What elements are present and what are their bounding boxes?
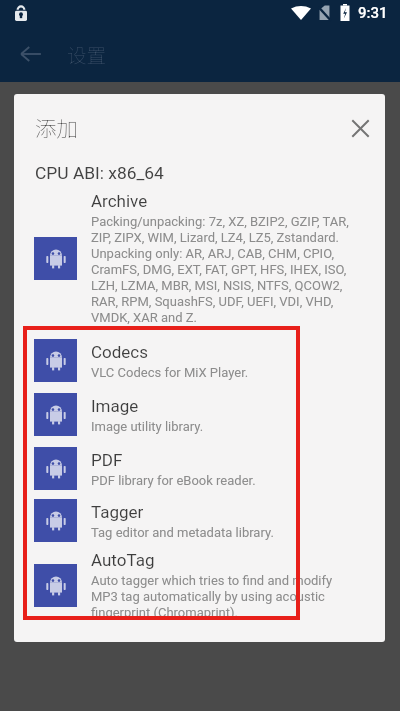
button[interactable]: Image xyxy=(14,393,385,436)
staticText: Tagger xyxy=(91,502,144,522)
button[interactable]: Close xyxy=(345,113,375,143)
staticText: AutoTag xyxy=(91,550,155,570)
staticText: Auto tagger which tries to find and modi… xyxy=(91,573,357,620)
staticText: Codecs xyxy=(91,342,149,362)
staticText: Image xyxy=(91,396,139,416)
button[interactable]: Back xyxy=(13,36,49,72)
staticText: PDF xyxy=(91,450,123,470)
staticText: Tag editor and metadata library. xyxy=(91,525,274,540)
button[interactable]: Codecs xyxy=(14,339,385,382)
button[interactable]: AutoTag xyxy=(14,550,385,620)
button[interactable]: PDF xyxy=(14,447,385,490)
staticText: Packing/unpacking: 7z, XZ, BZIP2, GZIP, … xyxy=(91,214,357,325)
staticText: 9:31 xyxy=(358,4,388,22)
staticText: CPU ABI: x86_64 xyxy=(35,163,164,183)
staticText: 设置 xyxy=(67,40,107,68)
button[interactable]: Tagger xyxy=(14,499,385,542)
staticText: PDF library for eBook reader. xyxy=(91,473,256,488)
staticText: VLC Codecs for MiX Player. xyxy=(91,365,249,380)
staticText: Archive xyxy=(91,191,148,211)
staticText: 添加 xyxy=(35,112,79,143)
button[interactable]: Archive xyxy=(14,191,385,325)
staticText: Image utility library. xyxy=(91,419,204,434)
